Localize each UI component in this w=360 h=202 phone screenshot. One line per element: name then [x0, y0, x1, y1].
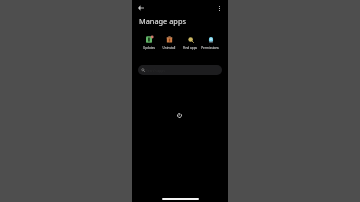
button[interactable]: Updates [134, 36, 164, 50]
button[interactable]: Find apps [175, 36, 205, 50]
button[interactable]: Back [135, 2, 147, 14]
staticText: Find apps [175, 46, 205, 50]
button[interactable]: Permissions [195, 36, 225, 50]
button[interactable]: Uninstall [154, 36, 184, 50]
staticText: Permissions [195, 46, 225, 50]
staticText: Manage apps [139, 16, 186, 26]
staticText: Updates [134, 46, 164, 50]
button[interactable]: More options [213, 2, 225, 14]
staticText: Uninstall [154, 46, 184, 50]
button[interactable]: Search apps [138, 65, 222, 75]
